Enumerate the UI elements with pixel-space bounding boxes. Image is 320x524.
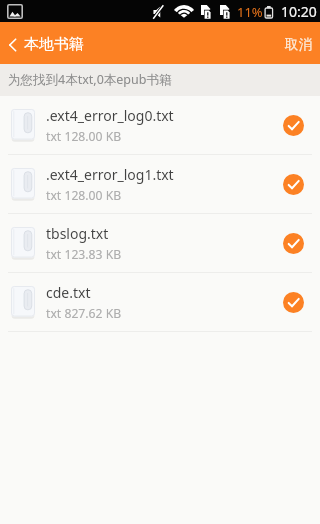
button[interactable]: Selected [283,292,304,313]
button[interactable]: cde.txt [0,273,320,331]
staticText: 10:20 [281,2,317,21]
button[interactable]: 取消 [271,22,320,64]
button[interactable]: Selected [283,115,304,136]
staticText: txt 827.62 KB [46,305,122,322]
button[interactable]: Selected [283,174,304,195]
button[interactable]: Selected [283,233,304,254]
button[interactable]: tbslog.txt [0,214,320,272]
staticText: .ext4_error_log1.txt [46,165,174,184]
button[interactable]: .ext4_error_log1.txt [0,155,320,213]
staticText: txt 128.00 KB [46,187,122,204]
staticText: txt 128.00 KB [46,128,122,145]
other: Back [8,37,17,53]
staticText: 取消 [285,36,312,53]
staticText: 本地书籍 [24,35,84,54]
staticText: .ext4_error_log0.txt [46,106,174,125]
button[interactable]: .ext4_error_log0.txt [0,96,320,154]
staticText: 为您找到4本txt,0本epub书籍 [8,71,172,88]
staticText: tbslog.txt [46,224,109,243]
staticText: 11% [237,3,263,21]
button[interactable]: Back [0,22,94,64]
staticText: txt 123.83 KB [46,246,122,263]
staticText: cde.txt [46,283,91,302]
